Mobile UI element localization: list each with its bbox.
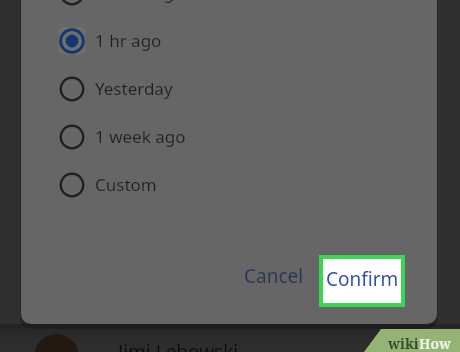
button[interactable]: Confirm (323, 259, 401, 303)
staticText: Jimi Lebowski (118, 339, 239, 352)
other: wikiHow (388, 334, 452, 352)
button[interactable]: 1 hr ago (21, 17, 437, 65)
button[interactable]: Custom (21, 161, 437, 209)
staticText: Yesterday (95, 77, 173, 100)
staticText: 30 min ago (95, 0, 185, 4)
button[interactable]: 30 min ago (21, 0, 437, 17)
staticText: 1 hr ago (95, 29, 162, 52)
staticText: 1 week ago (95, 125, 186, 148)
button[interactable]: 1 week ago (21, 113, 437, 161)
staticText: wiki (388, 334, 419, 352)
button[interactable]: Yesterday (21, 65, 437, 113)
staticText: Cancel (244, 263, 304, 289)
staticText: How (419, 334, 452, 352)
staticText: Confirm (326, 266, 399, 292)
staticText: Custom (95, 173, 157, 196)
button[interactable]: Cancel (237, 258, 311, 294)
